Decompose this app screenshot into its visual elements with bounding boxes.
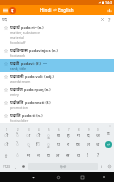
staticText: 7 [68,128,70,132]
button[interactable]: Back [21,172,46,182]
button[interactable]: Help [106,16,112,22]
staticText: त [87,141,90,148]
staticText: े [16,141,19,148]
staticText: 8 [78,128,80,132]
button[interactable]: न [33,150,43,161]
button[interactable]: ् [23,139,33,150]
button[interactable]: क [73,139,83,150]
button[interactable]: , [12,163,19,170]
button[interactable]: Recent apps [70,172,94,182]
staticText: ु [47,141,50,148]
button[interactable]: Open navigation drawer [1,6,9,14]
staticText: ं [16,152,19,159]
staticText: र [67,141,70,148]
button[interactable]: र [63,139,73,150]
button[interactable]: च [93,139,103,150]
staticText: ा [26,132,31,139]
staticText: ल [56,152,60,159]
button[interactable]: । [99,163,105,170]
staticText: pədɑːti (n.) [22,113,43,118]
staticText: पदार्पण [10,86,23,92]
staticText: पदाति [10,112,21,118]
staticText: promotion [10,105,28,110]
button[interactable]: प [53,139,63,150]
staticText: पदविन्यास [10,47,28,53]
staticText: foodstuff [10,40,26,45]
button[interactable]: व [43,150,53,161]
button[interactable]: 6 [53,128,63,139]
button[interactable]: App icon [9,7,16,14]
button[interactable]: म [23,150,33,161]
staticText: ?123 [3,165,10,169]
button[interactable]: पदोन्नति [0,98,114,111]
button[interactable]: Space [28,163,98,170]
button[interactable]: More options [105,6,113,14]
staticText: ू [47,132,50,139]
button[interactable]: े [12,139,23,150]
button[interactable]: पद [2,15,99,23]
button[interactable]: 4 [33,128,43,139]
staticText: ह [67,132,70,139]
staticText: क [76,141,80,148]
staticText: entry [10,92,19,97]
staticText: 1 [6,128,8,132]
staticText: पदार्थ [10,24,20,30]
staticText: pədəviː (f.) [21,61,41,66]
button[interactable]: ि [33,139,43,150]
button[interactable]: 0 [93,128,103,139]
staticText: ! [87,152,89,159]
button[interactable]: ल [53,150,63,161]
button[interactable]: ं [12,150,23,161]
button[interactable]: पदाति [0,111,114,123]
staticText: च [96,141,100,148]
button[interactable]: ु [43,139,53,150]
button[interactable]: ⇧ [1,150,12,161]
button[interactable]: 3 [23,128,33,139]
button[interactable]: Enter [103,139,113,150]
button[interactable]: पदविन्यास [0,46,114,59]
button[interactable]: 7 [63,128,73,139]
staticText: pədɑːrpəɳ (n.) [24,87,51,92]
button[interactable]: स [63,150,73,161]
staticText: प [57,141,60,148]
staticText: 3 [28,128,30,132]
button[interactable]: 5 [43,128,53,139]
button[interactable]: Keyboard settings [108,124,112,128]
staticText: footwork [10,53,26,58]
staticText: हिन्दी [60,165,67,169]
staticText: English [58,7,74,13]
button[interactable]: ?123 [1,163,12,170]
button[interactable]: ड [103,128,113,139]
button[interactable]: Emoji [105,163,113,170]
staticText: 0 [97,128,99,132]
button[interactable]: ! [83,150,93,161]
button[interactable]: पदार्थ [0,23,114,46]
staticText: 5 [48,128,50,132]
staticText: 2 [17,128,19,132]
button[interactable]: Home [46,172,70,182]
button[interactable]: Screenshot [94,172,114,182]
staticText: , [15,164,17,169]
button[interactable]: 1 [1,128,12,139]
button[interactable]: त [83,139,93,150]
button[interactable]: 2 [12,128,23,139]
button[interactable]: पदावली [0,72,114,85]
button[interactable]: Clear [99,16,105,22]
button[interactable]: य [73,150,83,161]
staticText: पदोन्नति [10,99,24,105]
button[interactable]: पदवी [0,59,114,72]
button[interactable]: 8 [73,128,83,139]
button[interactable]: 9 [83,128,93,139]
button[interactable]: पदार्पण [0,85,114,98]
button[interactable]: ो [1,139,12,150]
staticText: 9 [88,128,90,132]
staticText: ौ [4,132,9,139]
staticText: ो [4,141,9,148]
staticText: pədɑːrtʰ (n.) [21,25,44,30]
staticText: द [87,132,90,139]
button[interactable]: Voice input [19,163,27,170]
staticText: व [47,152,50,159]
button[interactable]: ? [93,150,103,161]
staticText: पदावली [10,73,24,79]
staticText: pədɑːvəliː (adj.) [25,74,54,79]
